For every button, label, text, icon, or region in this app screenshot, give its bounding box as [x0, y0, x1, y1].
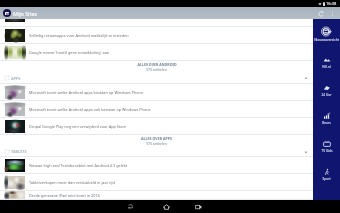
staticText: TABLETS [11, 149, 27, 154]
button[interactable]: Recent apps [181, 200, 215, 213]
staticText: NU.nl [322, 65, 331, 69]
button[interactable] [0, 19, 313, 27]
button[interactable]: Drupal Google Play nog een verwijderd vo… [0, 118, 313, 135]
button[interactable]: More options [328, 9, 337, 18]
staticText: Google noemt 'hoofd gene ontwikkeling' a… [29, 50, 110, 55]
staticText: Nieuwe high-end Toshiba tablet met Andro… [29, 163, 128, 168]
button[interactable]: Nieuwsoverzicht [313, 20, 340, 48]
button[interactable]: TV Gids [313, 132, 340, 160]
staticText: Tabletverkopen meer dan verdubbeld in ja… [29, 180, 115, 185]
button[interactable]: Derde generatie iPad mini komt in 2014 [0, 191, 313, 200]
staticText: Drupal Google Play nog een verwijderd vo… [29, 124, 127, 129]
staticText: 16:38 [326, 1, 337, 6]
button[interactable]: Back [113, 200, 147, 213]
staticText: TV Gids [321, 149, 333, 153]
staticText: Mijn Sites [13, 10, 37, 17]
staticText: Microsoft toont welke Android apps besta… [29, 90, 144, 95]
staticText: ALLES OVER ANDROID [137, 62, 177, 67]
staticText: 24 Uur [321, 93, 332, 97]
button[interactable]: NU.nl [313, 48, 340, 76]
button[interactable]: TABLETS [0, 147, 313, 157]
button[interactable]: Microsoft toont welke Android apps besta… [0, 84, 313, 101]
staticText: ALLES OVER APPS [141, 136, 172, 141]
button[interactable]: Beurs [313, 104, 340, 132]
button[interactable]: Refresh [315, 8, 326, 19]
button[interactable]: Tabletverkopen meer dan verdubbeld in ja… [0, 174, 313, 191]
button[interactable]: 24 Uur [313, 76, 340, 104]
staticText: Volledig nieuwsapps voor Android makkeli… [29, 33, 129, 38]
button[interactable]: APPS [0, 73, 313, 84]
button[interactable]: Google noemt 'hoofd gene ontwikkeling' a… [0, 44, 313, 61]
button[interactable]: Nieuwe high-end Toshiba tablet met Andro… [0, 157, 313, 174]
staticText: 570 artikelen [146, 141, 167, 146]
staticText: Beurs [322, 121, 331, 125]
button[interactable]: Volledig nieuwsapps voor Android makkeli… [0, 27, 313, 44]
staticText: Microsoft toont welke Android apps ook b… [29, 107, 151, 112]
button[interactable]: Home [149, 200, 183, 213]
staticText: 570 artikelen [146, 67, 167, 72]
staticText: APPS [11, 76, 21, 81]
staticText: Sport [322, 177, 331, 181]
button[interactable]: ALLES OVER ANDROID [0, 61, 313, 73]
staticText: Nieuwsoverzicht [314, 38, 339, 42]
staticText: Derde generatie iPad mini komt in 2014 [29, 193, 100, 198]
button[interactable]: ALLES OVER APPS [0, 135, 313, 147]
button[interactable]: Sport [313, 160, 340, 188]
button[interactable]: Microsoft toont welke Android apps ook b… [0, 101, 313, 118]
